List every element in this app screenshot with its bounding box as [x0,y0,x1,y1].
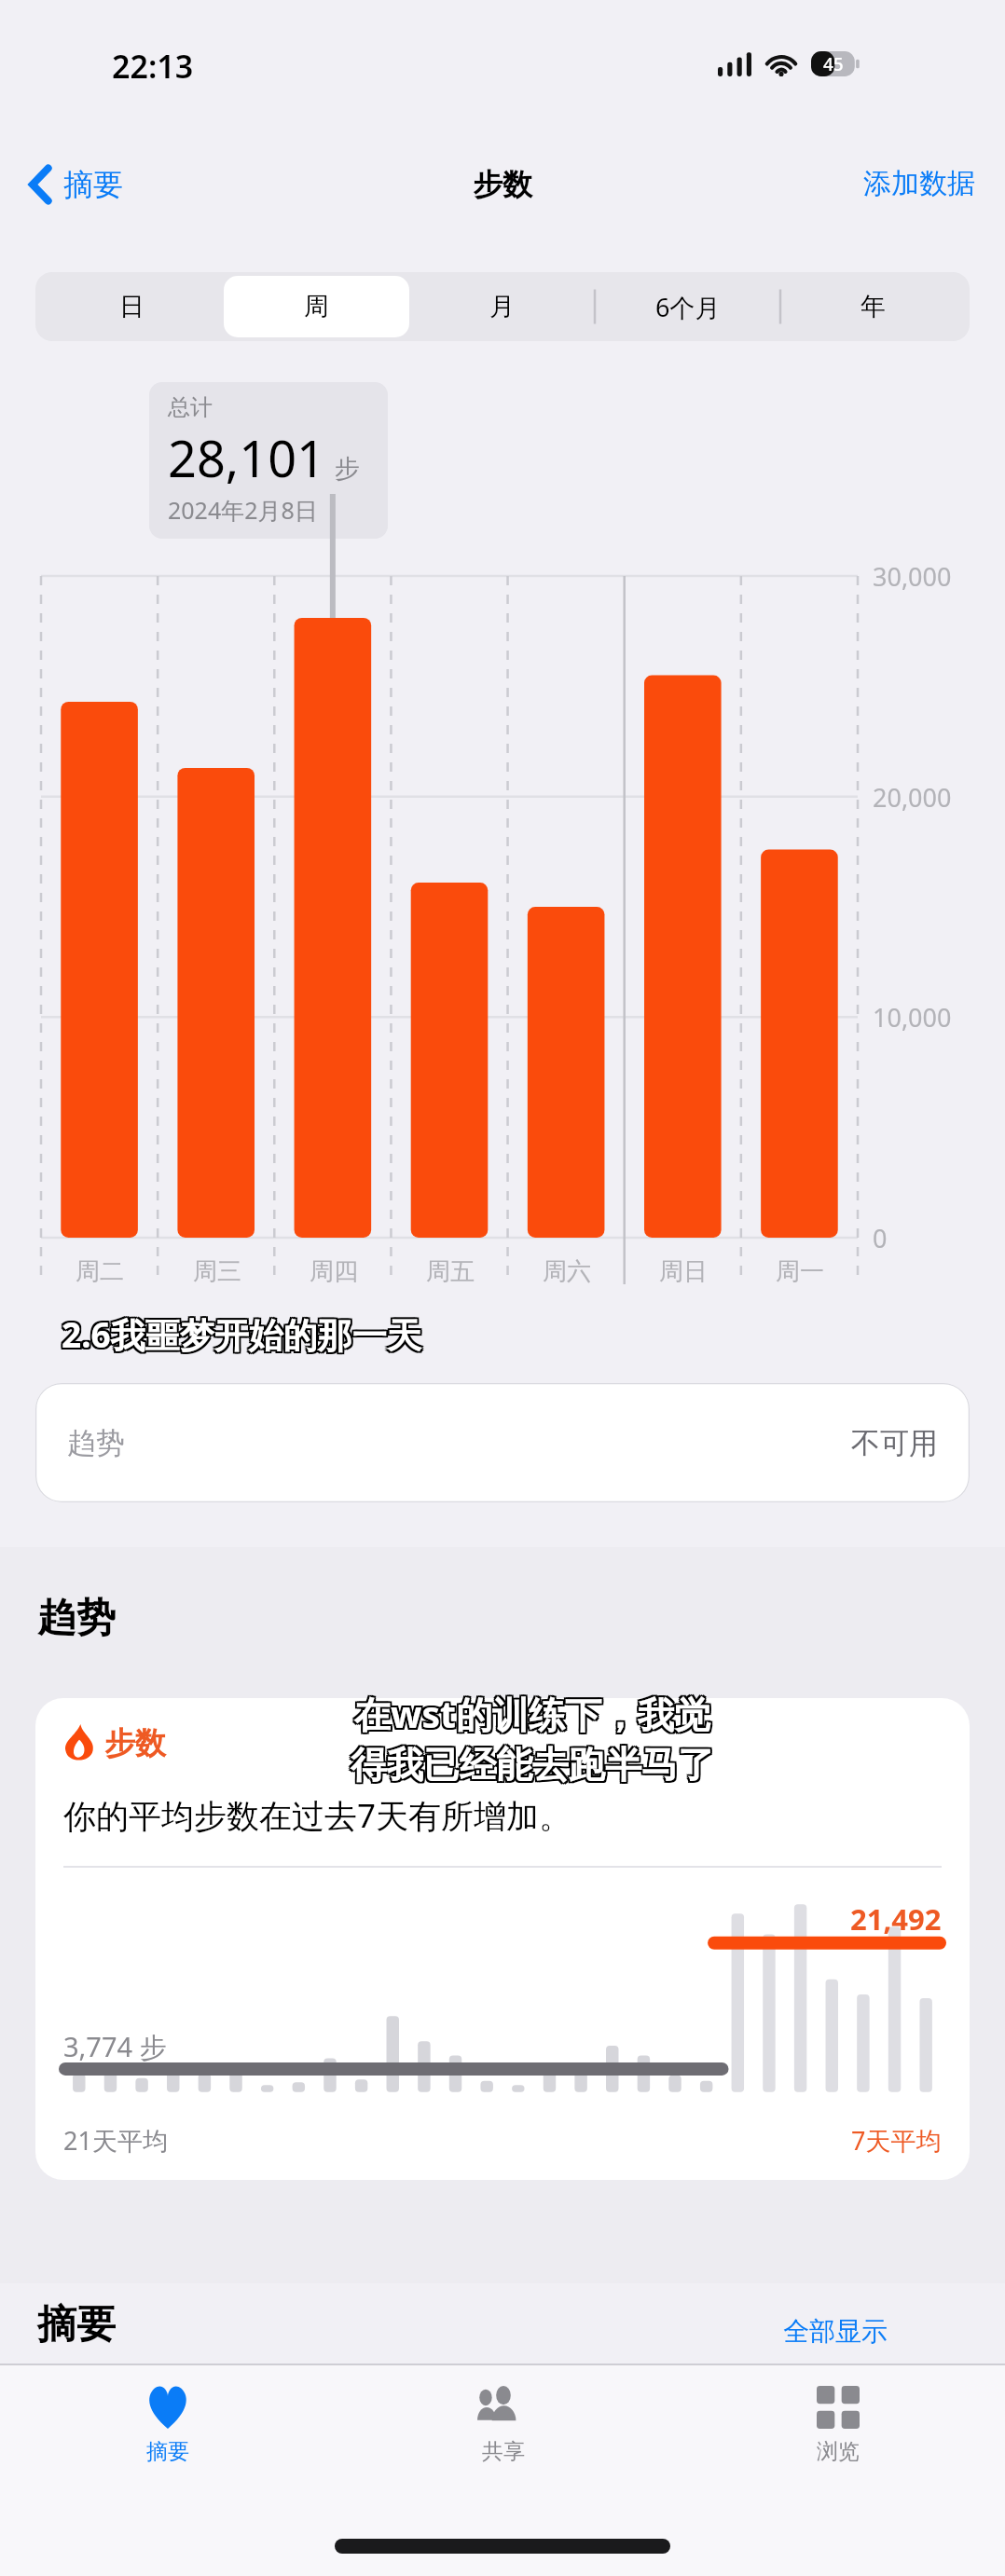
staticText: 共享 [482,2438,525,2465]
staticText: 周六 [543,1256,591,1287]
staticText: 2024年2月8日 [168,494,318,526]
staticText: 在wst的训练下，我觉 [354,1691,710,1740]
staticText: 步数 [473,166,532,203]
staticText: 摘要 [146,2438,189,2465]
other: 共享 [477,2386,530,2429]
staticText: 2.6我噩梦开始的那一天 [60,1312,420,1360]
button[interactable]: 步数 [35,1698,970,2180]
staticText: 浏览 [817,2438,860,2465]
staticText: 3,774 步 [63,2028,167,2065]
button[interactable]: 6个月 [595,276,780,337]
staticText: 趋势 [37,1594,116,1643]
staticText: 周五 [426,1256,475,1287]
button[interactable]: 共享 [336,2365,670,2465]
staticText: 在wst的训练下，我觉 [356,1689,712,1738]
staticText: 得我已经能去跑半马了 [352,1742,716,1788]
staticText: 总计 [168,393,213,421]
staticText: 2.6我噩梦开始的那一天 [63,1310,423,1358]
staticText: 得我已经能去跑半马了 [349,1742,712,1788]
staticText: 2.6我噩梦开始的那一天 [62,1312,421,1360]
button[interactable]: 全部显示 [783,2315,888,2348]
staticText: 2.6我噩梦开始的那一天 [60,1309,420,1356]
staticText: 在wst的训练下，我觉 [354,1687,710,1736]
staticText: 0 [873,1221,888,1255]
button[interactable]: 周 [224,276,409,337]
button[interactable]: 趋势 [35,1383,970,1502]
staticText: 28,101 [168,423,325,492]
staticText: 21天平均 [63,2123,168,2158]
staticText: 得我已经能去跑半马了 [352,1740,716,1786]
staticText: 2.6我噩梦开始的那一天 [63,1309,423,1356]
button[interactable]: 年 [780,276,966,337]
staticText: 7天平均 [851,2123,942,2158]
staticText: 2.6我噩梦开始的那一天 [60,1310,420,1358]
staticText: 月 [489,291,515,322]
staticText: 45 [823,52,844,76]
staticText: 摘要 [37,2300,116,2350]
staticText: 2.6我噩梦开始的那一天 [62,1309,421,1356]
staticText: 22:13 [112,45,194,88]
staticText: 2.6我噩梦开始的那一天 [63,1312,423,1360]
button[interactable]: 月 [409,276,595,337]
staticText: 得我已经能去跑半马了 [352,1744,716,1789]
staticText: 在wst的训练下，我觉 [356,1691,712,1740]
other: 浏览 [817,2386,860,2429]
staticText: 10,000 [873,1000,952,1035]
staticText: 得我已经能去跑半马了 [351,1740,714,1786]
staticText: 得我已经能去跑半马了 [351,1742,714,1788]
staticText: 21,492 [850,1899,942,1939]
staticText: 30,000 [873,559,952,594]
button[interactable]: 摘要 [0,2365,336,2465]
other: 步数 [63,1724,95,1763]
staticText: 摘要 [63,166,123,203]
staticText: 在wst的训练下，我觉 [356,1687,712,1736]
staticText: 周 [304,291,329,322]
staticText: 在wst的训练下，我觉 [352,1689,709,1738]
staticText: 你的平均步数在过去7天有所增加。 [63,1793,572,1838]
button[interactable]: 日 [39,276,224,337]
staticText: 20,000 [873,780,952,815]
staticText: 步 [335,453,360,485]
staticText: 得我已经能去跑半马了 [349,1740,712,1786]
staticText: 在wst的训练下，我觉 [354,1689,710,1738]
staticText: 周四 [310,1256,358,1287]
staticText: 周日 [659,1256,708,1287]
staticText: 得我已经能去跑半马了 [351,1744,714,1789]
staticText: 周三 [193,1256,241,1287]
staticText: 在wst的训练下，我觉 [352,1691,709,1740]
staticText: 年 [860,291,886,322]
button[interactable]: 添加数据 [858,160,981,207]
button[interactable]: 浏览 [670,2365,1005,2465]
staticText: 在wst的训练下，我觉 [352,1687,709,1736]
staticText: 不可用 [851,1425,938,1461]
staticText: 得我已经能去跑半马了 [349,1744,712,1789]
other: 摘要 [145,2386,190,2429]
staticText: 趋势 [67,1425,125,1461]
staticText: 2.6我噩梦开始的那一天 [62,1310,421,1358]
staticText: 周一 [776,1256,824,1287]
staticText: 日 [119,291,145,322]
staticText: 6个月 [655,290,721,324]
staticText: 周二 [76,1256,124,1287]
button[interactable]: 摘要 [24,158,129,211]
staticText: 步数 [104,1724,166,1763]
